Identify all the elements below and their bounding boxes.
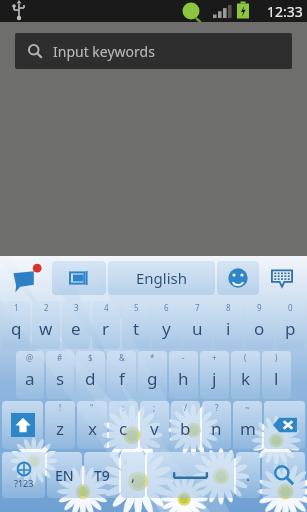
button[interactable]: 7 xyxy=(183,301,212,349)
staticText: : xyxy=(122,402,125,413)
staticText: c xyxy=(119,417,128,440)
button[interactable]: - xyxy=(169,351,198,399)
button[interactable]: Period xyxy=(236,452,260,498)
staticText: ( xyxy=(244,352,247,363)
staticText: ; xyxy=(153,402,156,413)
button[interactable]: Input keywords xyxy=(15,33,292,69)
staticText: x xyxy=(88,417,97,440)
staticText: v xyxy=(150,417,159,440)
staticText: y xyxy=(162,317,171,340)
staticText: 1 xyxy=(14,302,19,313)
button[interactable]: 3 xyxy=(62,301,90,349)
button[interactable]: 1 xyxy=(2,301,30,349)
staticText: . xyxy=(246,465,251,485)
staticText: & xyxy=(119,352,125,363)
button[interactable]: Shift xyxy=(2,401,43,449)
staticText: t xyxy=(133,317,140,340)
button[interactable]: + xyxy=(200,351,229,399)
staticText: u xyxy=(192,317,203,340)
staticText: g xyxy=(147,367,158,390)
staticText: r xyxy=(102,317,110,340)
staticText: s xyxy=(56,367,65,390)
staticText: , xyxy=(131,465,136,485)
staticText: Input keywords xyxy=(53,42,155,61)
staticText: m xyxy=(240,417,256,440)
staticText: w xyxy=(39,317,53,340)
staticText: + xyxy=(212,352,217,363)
staticText: h xyxy=(178,367,189,390)
button[interactable]: Backspace xyxy=(264,401,305,449)
staticText: * xyxy=(150,352,155,363)
staticText: f xyxy=(119,367,125,390)
staticText: l xyxy=(274,367,279,390)
staticText: 7 xyxy=(195,302,200,313)
staticText: e xyxy=(71,317,81,340)
button[interactable]: ? xyxy=(202,401,231,449)
staticText: 6 xyxy=(164,302,169,313)
staticText: b xyxy=(180,417,191,440)
staticText: a xyxy=(25,367,35,390)
staticText: @ xyxy=(26,352,34,363)
staticText: i xyxy=(226,317,231,340)
button[interactable]: ) xyxy=(262,351,291,399)
staticText: 9 xyxy=(257,302,262,313)
staticText: ?123 xyxy=(14,477,34,489)
button[interactable]: Search xyxy=(262,452,305,498)
button[interactable]: # xyxy=(46,351,74,399)
button[interactable]: / xyxy=(171,401,200,449)
button[interactable]: T9 xyxy=(84,452,119,498)
button[interactable]: ! xyxy=(45,401,75,449)
button[interactable]: Emoji xyxy=(217,261,259,295)
button[interactable]: GO Keyboard menu xyxy=(3,260,51,296)
staticText: T9 xyxy=(94,466,110,485)
button[interactable]: Space xyxy=(147,452,234,498)
staticText: - xyxy=(182,352,185,363)
button[interactable]: $ xyxy=(76,351,105,399)
button[interactable]: & xyxy=(107,351,136,399)
button[interactable]: English xyxy=(108,261,215,295)
staticText: k xyxy=(241,367,251,390)
staticText: o xyxy=(254,317,265,340)
staticText: ? xyxy=(215,402,219,413)
button[interactable]: 0 xyxy=(276,301,305,349)
button[interactable]: 2 xyxy=(32,301,60,349)
button[interactable]: Hide keyboard xyxy=(260,260,304,296)
button[interactable]: 8 xyxy=(214,301,243,349)
button[interactable]: @ xyxy=(16,351,44,399)
button[interactable]: : xyxy=(109,401,138,449)
staticText: English xyxy=(136,268,188,288)
staticText: 3 xyxy=(74,302,79,313)
staticText: p xyxy=(285,317,296,340)
button[interactable]: ( xyxy=(231,351,260,399)
staticText: " xyxy=(90,402,94,413)
staticText: d xyxy=(85,367,96,390)
staticText: ! xyxy=(59,402,62,413)
staticText: 12:33 xyxy=(267,2,303,21)
button[interactable]: Symbols xyxy=(2,452,45,498)
button[interactable]: ; xyxy=(140,401,169,449)
button[interactable]: " xyxy=(77,401,107,449)
staticText: j xyxy=(212,367,217,390)
button[interactable]: 6 xyxy=(152,301,181,349)
staticText: EN xyxy=(55,466,74,485)
staticText: $ xyxy=(88,352,93,363)
staticText: 4 xyxy=(104,302,109,313)
button[interactable]: * xyxy=(138,351,167,399)
staticText: q xyxy=(11,317,22,340)
staticText: # xyxy=(57,352,63,363)
button[interactable]: 9 xyxy=(245,301,274,349)
staticText: ~ xyxy=(245,402,250,413)
button[interactable]: Input method xyxy=(52,261,106,295)
staticText: 5 xyxy=(134,302,139,313)
staticText: 8 xyxy=(226,302,231,313)
staticText: n xyxy=(211,417,222,440)
button[interactable]: 4 xyxy=(92,301,120,349)
staticText: z xyxy=(56,417,64,440)
staticText: 0 xyxy=(288,302,293,313)
button[interactable]: 5 xyxy=(122,301,150,349)
button[interactable]: Comma xyxy=(121,452,145,498)
button[interactable]: ~ xyxy=(233,401,262,449)
staticText: / xyxy=(184,402,187,413)
button[interactable]: EN xyxy=(47,452,82,498)
staticText: ) xyxy=(275,352,278,363)
